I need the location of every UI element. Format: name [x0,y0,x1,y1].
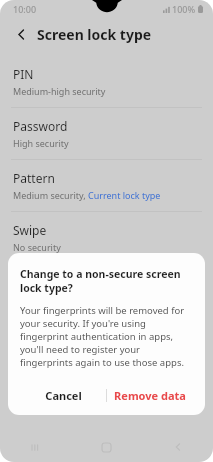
staticText: PIN [13,66,34,82]
button[interactable]: PIN [0,56,213,107]
staticText: No security [13,241,61,253]
staticText: Current lock type [88,189,161,201]
button[interactable]: None [0,264,213,300]
staticText: Medium-high security [13,85,106,97]
staticText: 100% [172,3,196,15]
button[interactable]: Back [11,24,31,44]
button[interactable]: Face [0,326,213,356]
staticText: Swipe [13,222,47,238]
button[interactable]: Password [0,108,213,159]
button[interactable]: Swipe [0,212,213,263]
staticText: Biometrics [13,310,59,322]
staticText: Medium security, [13,189,88,201]
button[interactable]: Recents [0,432,71,462]
button[interactable]: Pattern [0,160,213,211]
staticText: Cancel [45,388,82,403]
button[interactable]: Remove data [107,383,193,407]
staticText: Pattern [13,170,55,186]
button[interactable]: Back [142,432,213,462]
staticText: Remove data [114,388,186,403]
button[interactable]: Cancel [20,383,106,407]
staticText: None [13,274,44,290]
staticText: 10:00 [13,3,37,15]
staticText: High security [13,137,69,149]
staticText: Screen lock type [37,25,152,44]
staticText: Password [13,118,68,134]
staticText: Face [13,333,39,349]
staticText: Change to a non-secure screen lock type? [20,267,193,295]
staticText: Your fingerprints will be removed for yo… [20,304,193,369]
